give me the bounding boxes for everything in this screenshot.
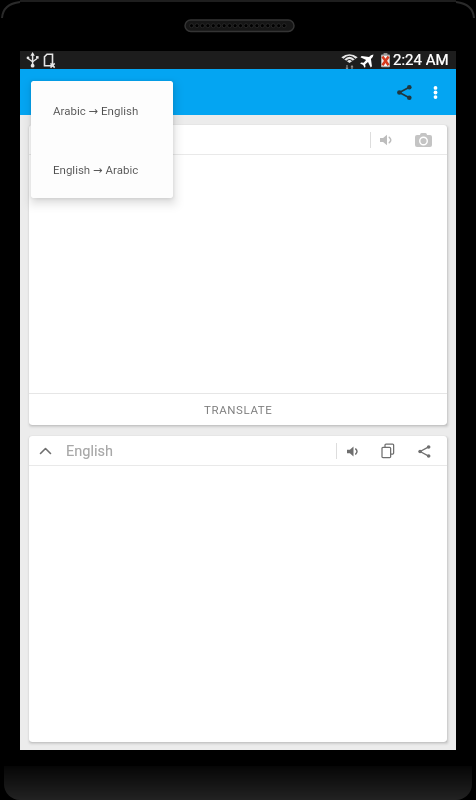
button[interactable] [388,76,420,108]
button[interactable] [340,438,366,464]
button[interactable]: English → Arabic [31,140,173,198]
button[interactable]: Arabic → English [31,81,173,139]
staticText: 2:24 AM [393,51,449,69]
button[interactable] [32,438,58,464]
staticText: Arabic → English [53,104,139,117]
button[interactable] [411,438,437,464]
button[interactable] [373,126,401,154]
staticText: TRANSLATE [204,403,273,416]
button[interactable] [375,438,401,464]
button[interactable]: TRANSLATE [29,394,447,425]
staticText: English [66,443,113,460]
button[interactable] [409,126,437,154]
button[interactable] [420,76,450,108]
staticText: English → Arabic [53,163,139,176]
